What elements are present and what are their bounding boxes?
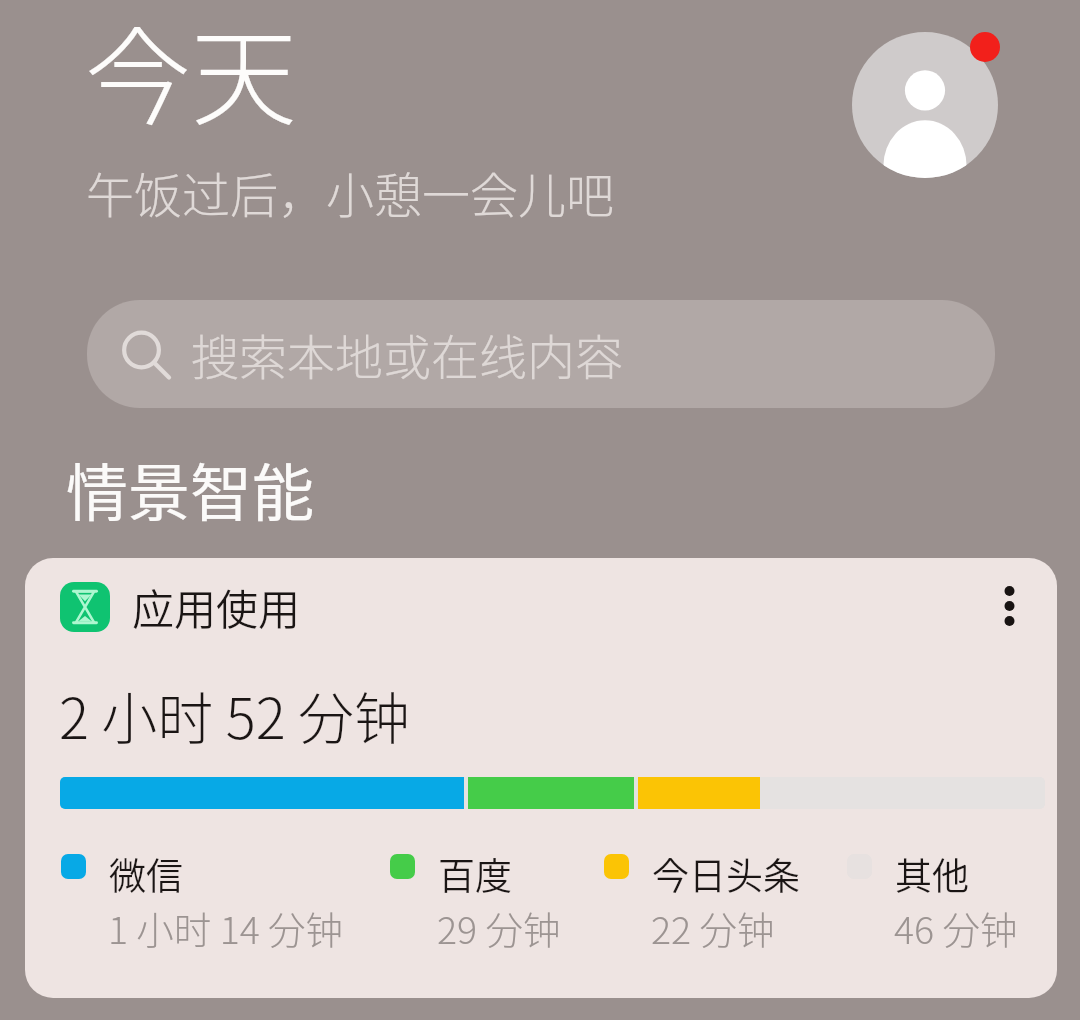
- staticText: 46 分钟: [894, 900, 1018, 954]
- button[interactable]: Profile: [852, 32, 998, 178]
- staticText: 1 小时 14 分钟: [108, 900, 344, 954]
- staticText: 微信: [109, 847, 183, 901]
- staticText: 今日头条: [652, 847, 800, 901]
- staticText: 百度: [438, 847, 512, 901]
- staticText: 应用使用: [132, 576, 301, 637]
- staticText: 搜索本地或在线内容: [191, 319, 624, 389]
- staticText: 29 分钟: [437, 900, 561, 954]
- staticText: 今天: [85, 0, 297, 146]
- staticText: 2 小时 52 分钟: [59, 674, 411, 755]
- button[interactable]: 微信: [59, 843, 309, 943]
- button[interactable]: 百度: [388, 843, 638, 943]
- staticText: 午饭过后，小憩一会儿吧: [86, 157, 615, 227]
- button[interactable]: 应用使用: [25, 558, 1057, 998]
- button[interactable]: 今日头条: [602, 843, 852, 943]
- staticText: 22 分钟: [651, 900, 775, 954]
- button[interactable]: 其他: [845, 843, 1057, 943]
- staticText: 情景智能: [66, 444, 315, 534]
- button[interactable]: More options: [971, 568, 1047, 644]
- staticText: 其他: [895, 847, 969, 901]
- button[interactable]: 搜索本地或在线内容: [87, 300, 995, 408]
